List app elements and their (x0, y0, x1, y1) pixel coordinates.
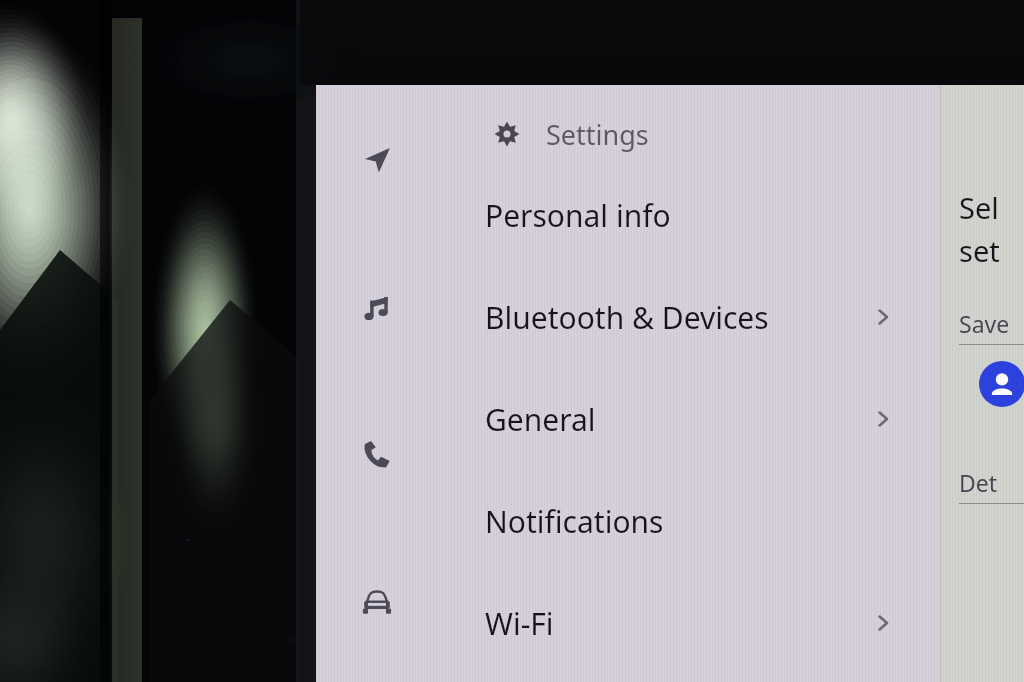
button[interactable]: Wi-Fi (466, 589, 921, 657)
button[interactable]: Settings (494, 112, 649, 156)
staticText: Save (959, 308, 1010, 339)
staticText: Bluetooth & Devices (485, 297, 769, 338)
staticText: Notifications (485, 501, 664, 542)
button[interactable]: Vehicle (353, 578, 401, 626)
button[interactable]: Notifications (466, 487, 921, 555)
button[interactable]: Bluetooth & Devices (466, 283, 921, 351)
staticText: General (485, 399, 596, 440)
staticText: Personal info (485, 195, 671, 236)
button[interactable]: Personal info (466, 181, 921, 249)
button[interactable]: Media (353, 284, 401, 332)
staticText: set (959, 231, 1000, 270)
staticText: Settings (546, 116, 649, 153)
staticText: Wi-Fi (485, 603, 554, 644)
button[interactable]: Profile (979, 361, 1024, 407)
button[interactable]: Phone (353, 431, 401, 479)
staticText: Det (959, 467, 998, 498)
staticText: Sel (959, 188, 999, 227)
button[interactable]: Navigation (353, 136, 401, 184)
button[interactable]: General (466, 385, 921, 453)
